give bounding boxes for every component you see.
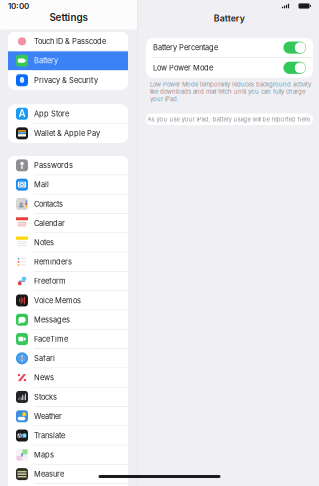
button[interactable]: Low Power Mode [146, 58, 313, 78]
staticText: A [18, 433, 21, 438]
staticText: Calendar [34, 219, 65, 228]
button[interactable]: A [8, 426, 128, 445]
staticText: Passwords [34, 161, 73, 170]
staticText: Battery [214, 13, 245, 23]
button[interactable]: Messages [8, 310, 128, 330]
staticText: Measure [34, 470, 64, 479]
staticText: Battery [34, 56, 58, 65]
staticText: Translate [34, 431, 65, 440]
staticText: Wallet & Apple Pay [34, 129, 100, 138]
button[interactable]: Weather [8, 407, 128, 426]
button[interactable]: Wallet & Apple Pay [8, 124, 128, 143]
button[interactable]: Maps [8, 445, 128, 465]
staticText: Voice Memos [34, 296, 81, 305]
staticText: Weather [34, 412, 62, 421]
staticText: Privacy & Security [34, 76, 98, 85]
staticText: Reminders [34, 257, 72, 266]
button[interactable]: Safari [8, 349, 128, 368]
button[interactable]: Freeform [8, 272, 128, 291]
button[interactable]: Touch ID & Passcode [8, 32, 128, 51]
staticText: News [34, 373, 54, 382]
staticText: A [18, 108, 25, 120]
button[interactable]: Reminders [8, 252, 128, 272]
button[interactable]: Notes [8, 233, 128, 252]
staticText: Notes [34, 238, 54, 247]
button[interactable]: Contacts [8, 195, 128, 214]
staticText: Low Power Mode temporarily reduces backg… [150, 81, 311, 103]
staticText: App Store [34, 109, 69, 118]
staticText: Freeform [34, 277, 66, 286]
button[interactable]: Calendar [8, 214, 128, 233]
button[interactable]: A [8, 104, 128, 124]
button[interactable]: Measure [8, 465, 128, 484]
button[interactable]: Privacy & Security [8, 71, 128, 90]
button[interactable]: Passwords [8, 156, 128, 175]
staticText: 文 [22, 433, 26, 438]
button[interactable]: Voice Memos [8, 291, 128, 310]
staticText: Contacts [34, 199, 63, 208]
staticText: Settings [49, 12, 87, 23]
staticText: Maps [34, 450, 54, 459]
staticText: FaceTime [34, 334, 68, 343]
staticText: Battery Percentage [153, 43, 218, 52]
button[interactable]: ✉ [8, 175, 128, 195]
staticText: As you use your iPad, battery usage will… [147, 116, 311, 123]
staticText: Safari [34, 354, 55, 363]
staticText: Low Power Mode [153, 63, 213, 72]
staticText: Mail [34, 180, 49, 189]
staticText: Touch ID & Passcode [34, 37, 106, 46]
staticText: Stocks [34, 392, 57, 401]
button[interactable]: FaceTime [8, 330, 128, 349]
button[interactable]: Battery Percentage [146, 38, 313, 58]
staticText: ✉ [18, 180, 25, 189]
button[interactable]: Battery [8, 51, 128, 71]
button[interactable]: Stocks [8, 388, 128, 407]
staticText: 10:00 [8, 1, 29, 11]
button[interactable]: News [8, 368, 128, 388]
staticText: Messages [34, 315, 70, 324]
